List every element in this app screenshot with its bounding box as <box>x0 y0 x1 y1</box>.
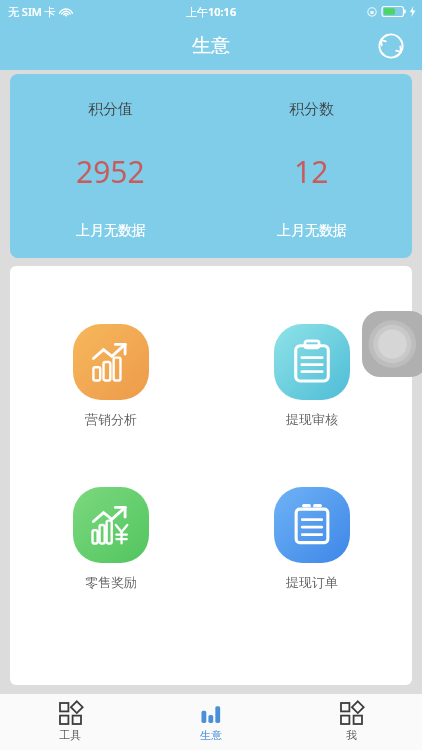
staticText: 生意 <box>192 34 230 58</box>
button[interactable]: 提现订单 <box>211 485 412 592</box>
button[interactable]: 刷新 <box>372 27 410 65</box>
staticText: 工具 <box>59 728 81 742</box>
staticText: 积分值 <box>88 100 133 119</box>
staticText: 生意 <box>200 728 222 742</box>
button[interactable]: 我 <box>281 694 422 750</box>
button[interactable]: 辅助触控 <box>362 311 422 377</box>
button[interactable]: 提现审核 <box>211 322 412 429</box>
staticText: 2952 <box>76 151 145 192</box>
staticText: 我 <box>346 728 357 742</box>
button[interactable]: 生意 <box>140 694 281 750</box>
button[interactable]: 营销分析 <box>10 322 211 429</box>
staticText: 零售奖励 <box>85 574 137 590</box>
staticText: 营销分析 <box>85 411 137 427</box>
staticText: 积分数 <box>289 100 334 119</box>
button[interactable]: 零售奖励 <box>10 485 211 592</box>
staticText: 无 SIM 卡 <box>8 4 56 19</box>
staticText: 上午10:16 <box>186 4 237 19</box>
button[interactable]: 积分数 <box>211 74 412 258</box>
staticText: 提现订单 <box>286 574 338 590</box>
staticText: 上月无数据 <box>76 222 146 240</box>
staticText: 12 <box>294 151 329 192</box>
button[interactable]: 工具 <box>0 694 140 750</box>
staticText: 上月无数据 <box>277 222 347 240</box>
staticText: 提现审核 <box>286 411 338 427</box>
button[interactable]: 积分值 <box>10 74 211 258</box>
